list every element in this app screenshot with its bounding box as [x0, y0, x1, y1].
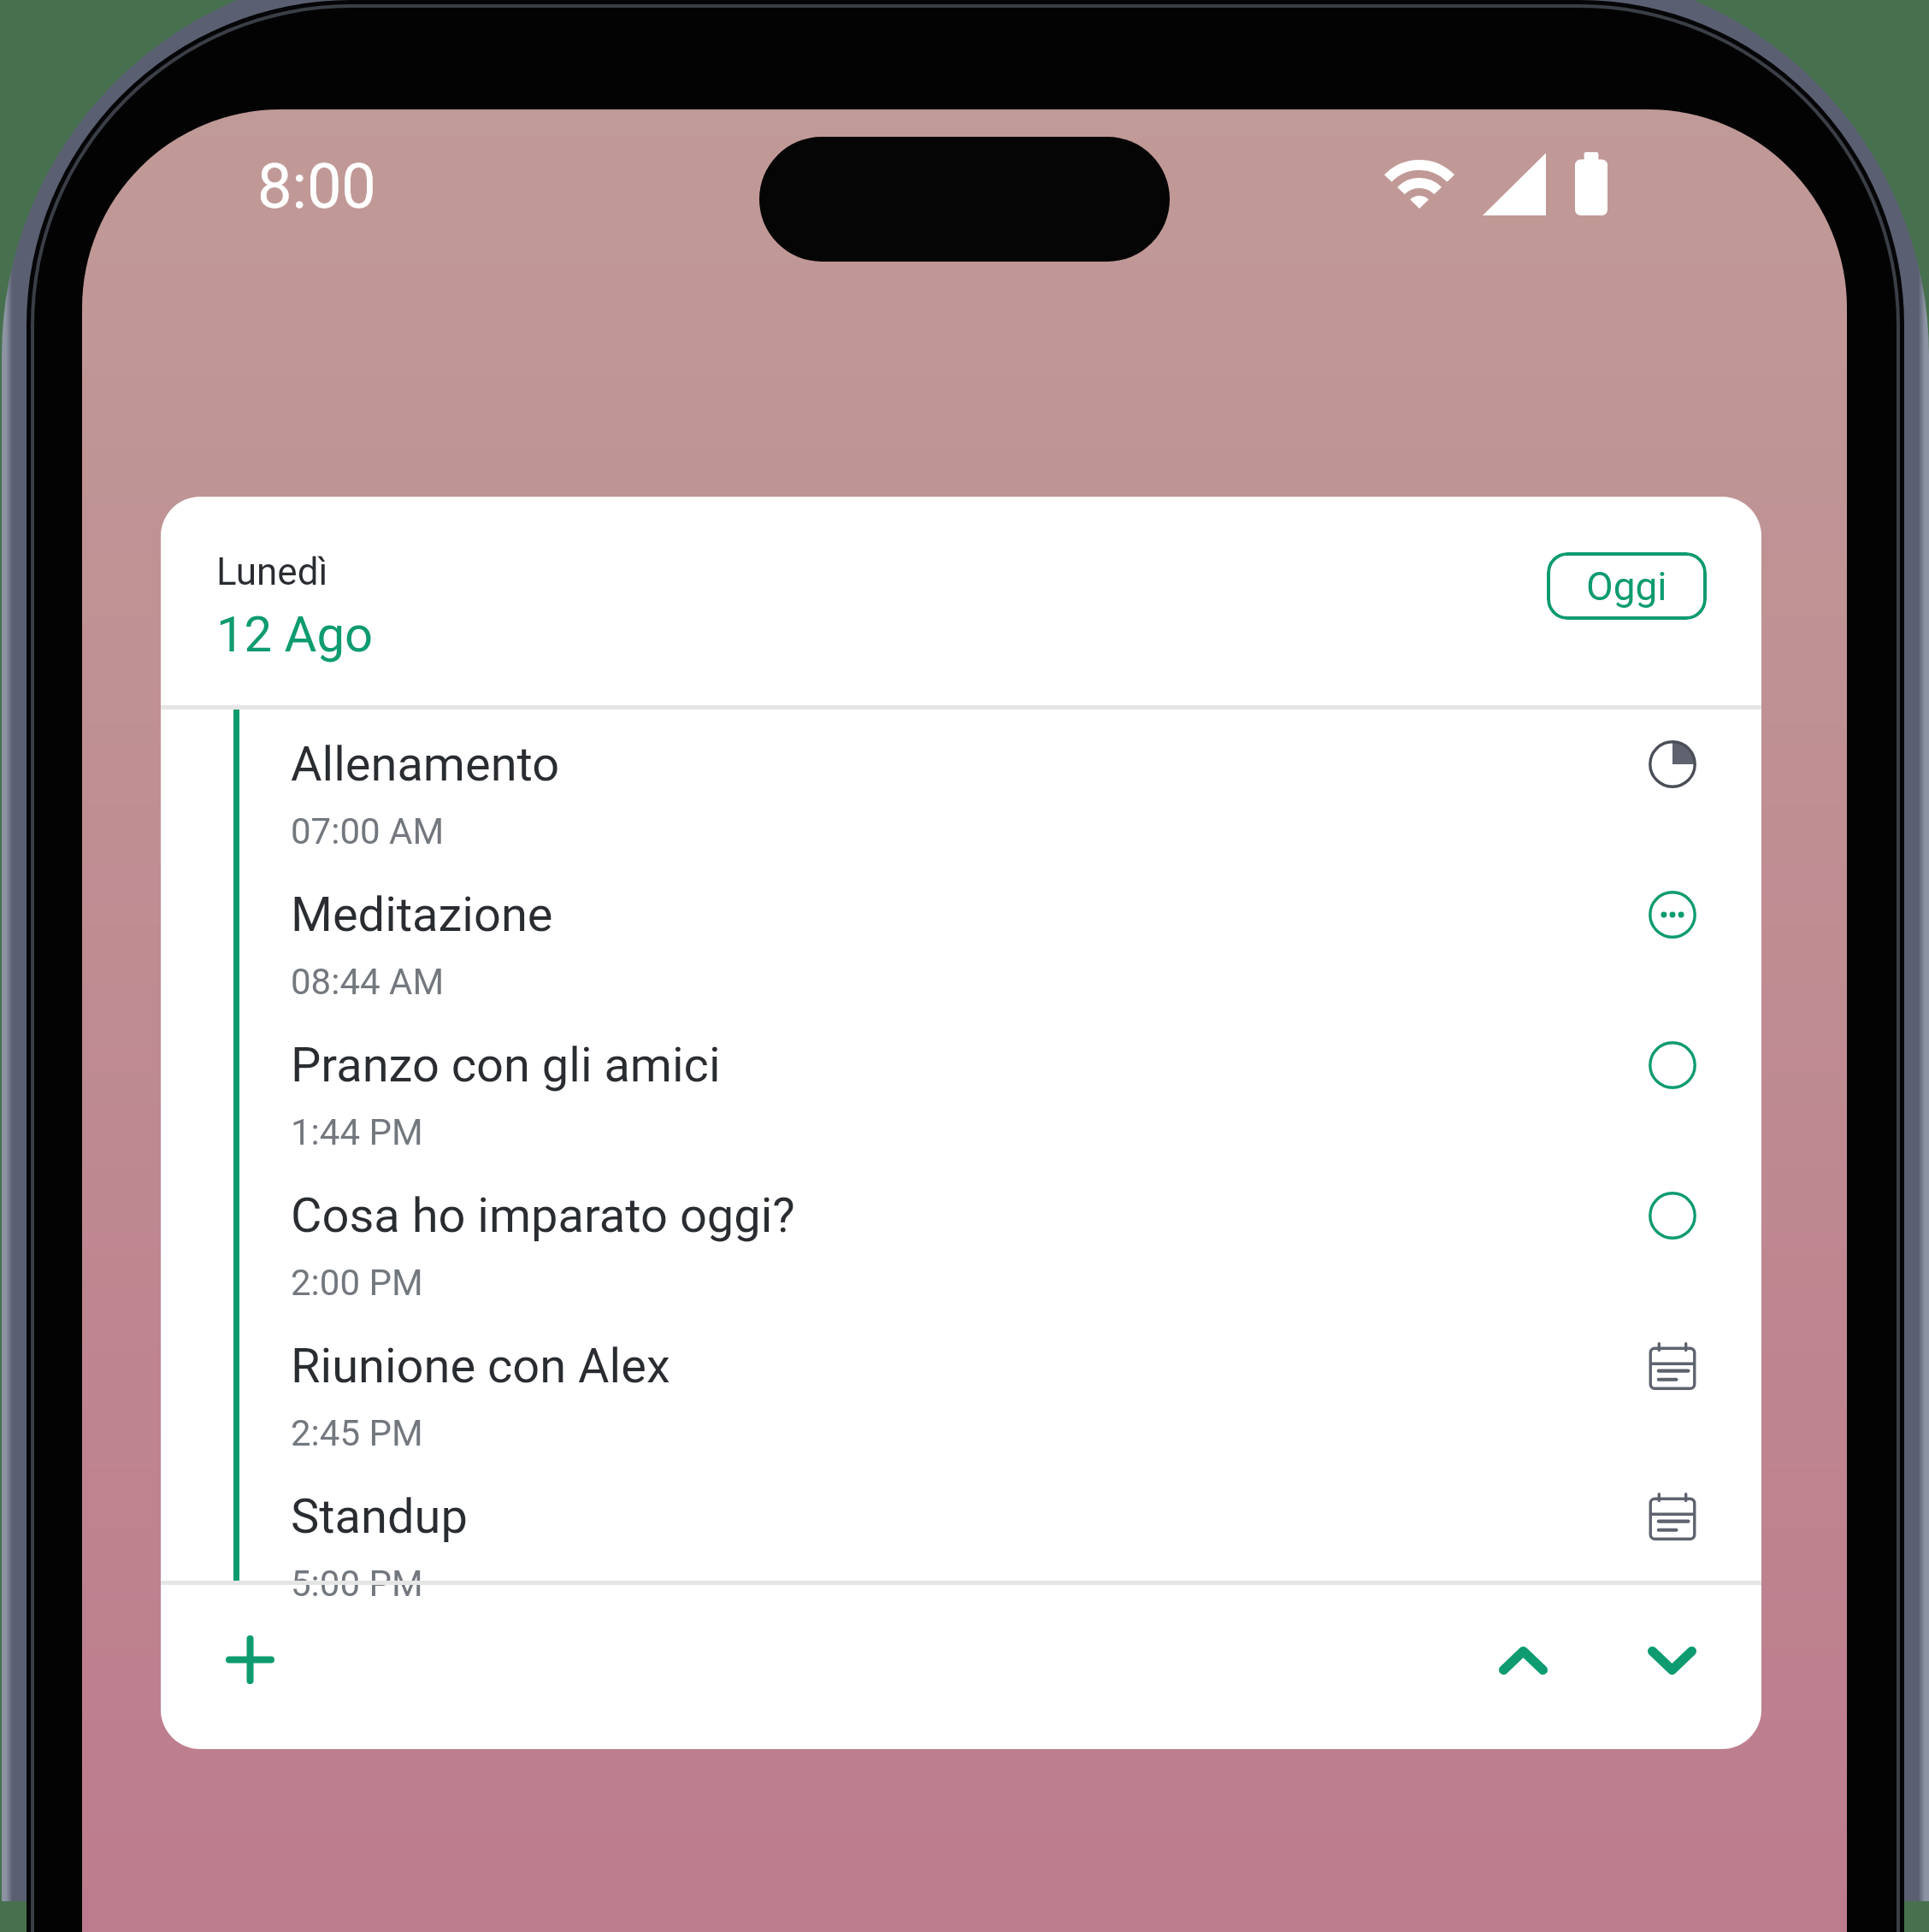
staticText: Cosa ho imparato oggi? — [291, 1187, 795, 1244]
staticText: Allenamento — [291, 736, 560, 792]
button[interactable]: Previous day — [1476, 1613, 1570, 1707]
staticText: 2:00 PM — [291, 1262, 423, 1304]
button[interactable]: Oggi — [1547, 552, 1707, 620]
button[interactable]: Allenamento — [161, 704, 1761, 855]
staticText: 08:44 AM — [291, 961, 445, 1003]
staticText: Pranzo con gli amici — [291, 1037, 721, 1093]
button[interactable]: Next day — [1625, 1613, 1719, 1707]
button[interactable]: Riunione con Alex — [161, 1306, 1761, 1457]
button[interactable]: Standup — [161, 1457, 1761, 1607]
staticText: 07:00 AM — [291, 810, 445, 852]
button[interactable]: Meditazione — [161, 855, 1761, 1005]
staticText: 8:00 — [257, 150, 376, 222]
button[interactable]: Pranzo con gli amici — [161, 1005, 1761, 1156]
staticText: 1:44 PM — [291, 1111, 423, 1153]
staticText: 5:00 PM — [291, 1563, 423, 1605]
staticText: Standup — [291, 1488, 468, 1545]
staticText: 12 Ago — [216, 605, 374, 663]
staticText: Riunione con Alex — [291, 1338, 670, 1394]
button[interactable]: Cosa ho imparato oggi? — [161, 1156, 1761, 1306]
staticText: Lunedì — [216, 550, 328, 594]
button[interactable]: Add event — [203, 1612, 297, 1706]
staticText: 2:45 PM — [291, 1412, 423, 1454]
staticText: Meditazione — [291, 886, 553, 943]
staticText: Oggi — [1586, 563, 1667, 610]
